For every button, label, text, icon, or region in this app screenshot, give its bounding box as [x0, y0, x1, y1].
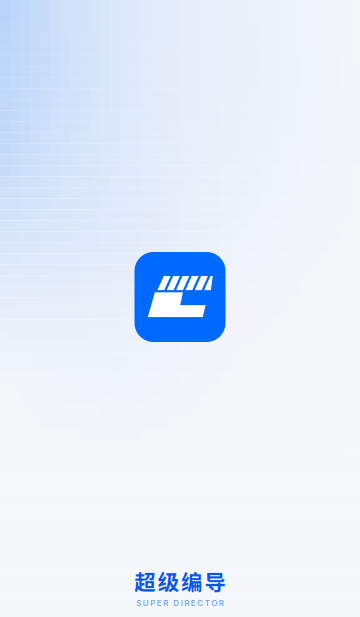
staticText: 超级编导: [134, 565, 226, 596]
staticText: SUPER DIRECTOR: [136, 598, 224, 608]
